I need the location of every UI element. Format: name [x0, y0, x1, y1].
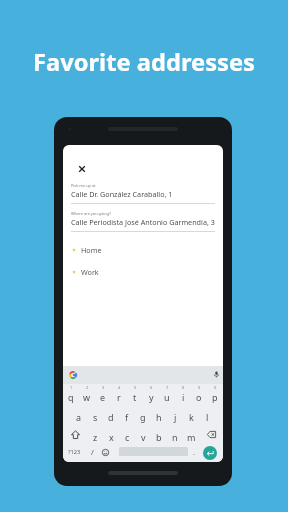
staticText: 6: [150, 385, 153, 390]
staticText: p: [212, 391, 218, 403]
button[interactable]: Close: [77, 164, 87, 174]
button[interactable]: 6: [143, 386, 159, 403]
staticText: o: [196, 391, 202, 403]
staticText: 1: [70, 385, 73, 390]
staticText: 8: [182, 385, 185, 390]
staticText: s: [93, 411, 98, 423]
button[interactable]: 8: [175, 386, 191, 403]
staticText: g: [140, 411, 146, 423]
button[interactable]: 7: [159, 386, 175, 403]
button[interactable]: ?123: [64, 444, 85, 460]
staticText: e: [100, 391, 106, 403]
button[interactable]: 2: [79, 386, 95, 403]
button[interactable]: 5: [127, 386, 143, 403]
staticText: y: [149, 391, 154, 403]
staticText: Where are you going?: [71, 211, 111, 216]
staticText: Work: [81, 267, 99, 277]
staticText: x: [109, 431, 114, 443]
button[interactable]: 1: [63, 386, 79, 403]
button[interactable]: b: [151, 426, 167, 443]
staticText: ?123: [68, 448, 81, 456]
button[interactable]: 3: [95, 386, 111, 403]
staticText: l: [206, 411, 209, 423]
button[interactable]: Voice input: [213, 371, 220, 378]
button[interactable]: m: [183, 426, 199, 443]
button[interactable]: Backspace: [199, 426, 223, 443]
staticText: Pick me up at: [71, 183, 96, 188]
staticText: t: [133, 391, 137, 403]
staticText: r: [117, 391, 121, 403]
button[interactable]: f: [119, 406, 135, 423]
staticText: Calle Dr. González Caraballo, 1: [71, 189, 173, 199]
button[interactable]: l: [199, 406, 215, 423]
staticText: a: [76, 411, 82, 423]
staticText: 9: [198, 385, 201, 390]
staticText: 5: [134, 385, 137, 390]
button[interactable]: 4: [111, 386, 127, 403]
button[interactable]: v: [135, 426, 151, 443]
button[interactable]: .: [189, 444, 200, 460]
button[interactable]: z: [87, 426, 103, 443]
button[interactable]: Shift: [63, 426, 87, 443]
staticText: d: [108, 411, 114, 423]
staticText: z: [93, 431, 98, 443]
button[interactable]: k: [183, 406, 199, 423]
staticText: f: [125, 411, 129, 423]
button[interactable]: s: [87, 406, 103, 423]
staticText: v: [141, 431, 146, 443]
staticText: i: [182, 391, 185, 403]
staticText: c: [125, 431, 130, 443]
staticText: 2: [86, 385, 89, 390]
staticText: 7: [166, 385, 169, 390]
staticText: u: [164, 391, 170, 403]
staticText: j: [174, 411, 177, 423]
button[interactable]: Work: [63, 264, 223, 280]
staticText: 3: [102, 385, 105, 390]
staticText: q: [68, 391, 74, 403]
staticText: Calle Periodista José Antonio Garmendia,…: [71, 217, 215, 227]
staticText: 0: [214, 385, 217, 390]
button[interactable]: n: [167, 426, 183, 443]
staticText: Favorite addresses: [0, 46, 288, 78]
button[interactable]: 0: [207, 386, 223, 403]
staticText: k: [189, 411, 194, 423]
button[interactable]: x: [103, 426, 119, 443]
button[interactable]: Google: [69, 371, 77, 379]
staticText: n: [172, 431, 178, 443]
button[interactable]: Home: [63, 242, 223, 258]
button[interactable]: d: [103, 406, 119, 423]
staticText: b: [156, 431, 162, 443]
button[interactable]: /: [86, 444, 99, 460]
button[interactable]: g: [135, 406, 151, 423]
button[interactable]: Emoji: [98, 444, 112, 460]
staticText: 4: [118, 385, 121, 390]
button[interactable]: j: [167, 406, 183, 423]
button[interactable]: a: [71, 406, 87, 423]
staticText: w: [83, 391, 91, 403]
button[interactable]: c: [119, 426, 135, 443]
staticText: h: [156, 411, 162, 423]
staticText: /: [91, 447, 94, 457]
staticText: Home: [81, 245, 102, 255]
staticText: .: [193, 447, 196, 457]
staticText: m: [187, 431, 196, 443]
button[interactable]: Enter: [203, 446, 217, 460]
button[interactable]: 9: [191, 386, 207, 403]
button[interactable]: h: [151, 406, 167, 423]
